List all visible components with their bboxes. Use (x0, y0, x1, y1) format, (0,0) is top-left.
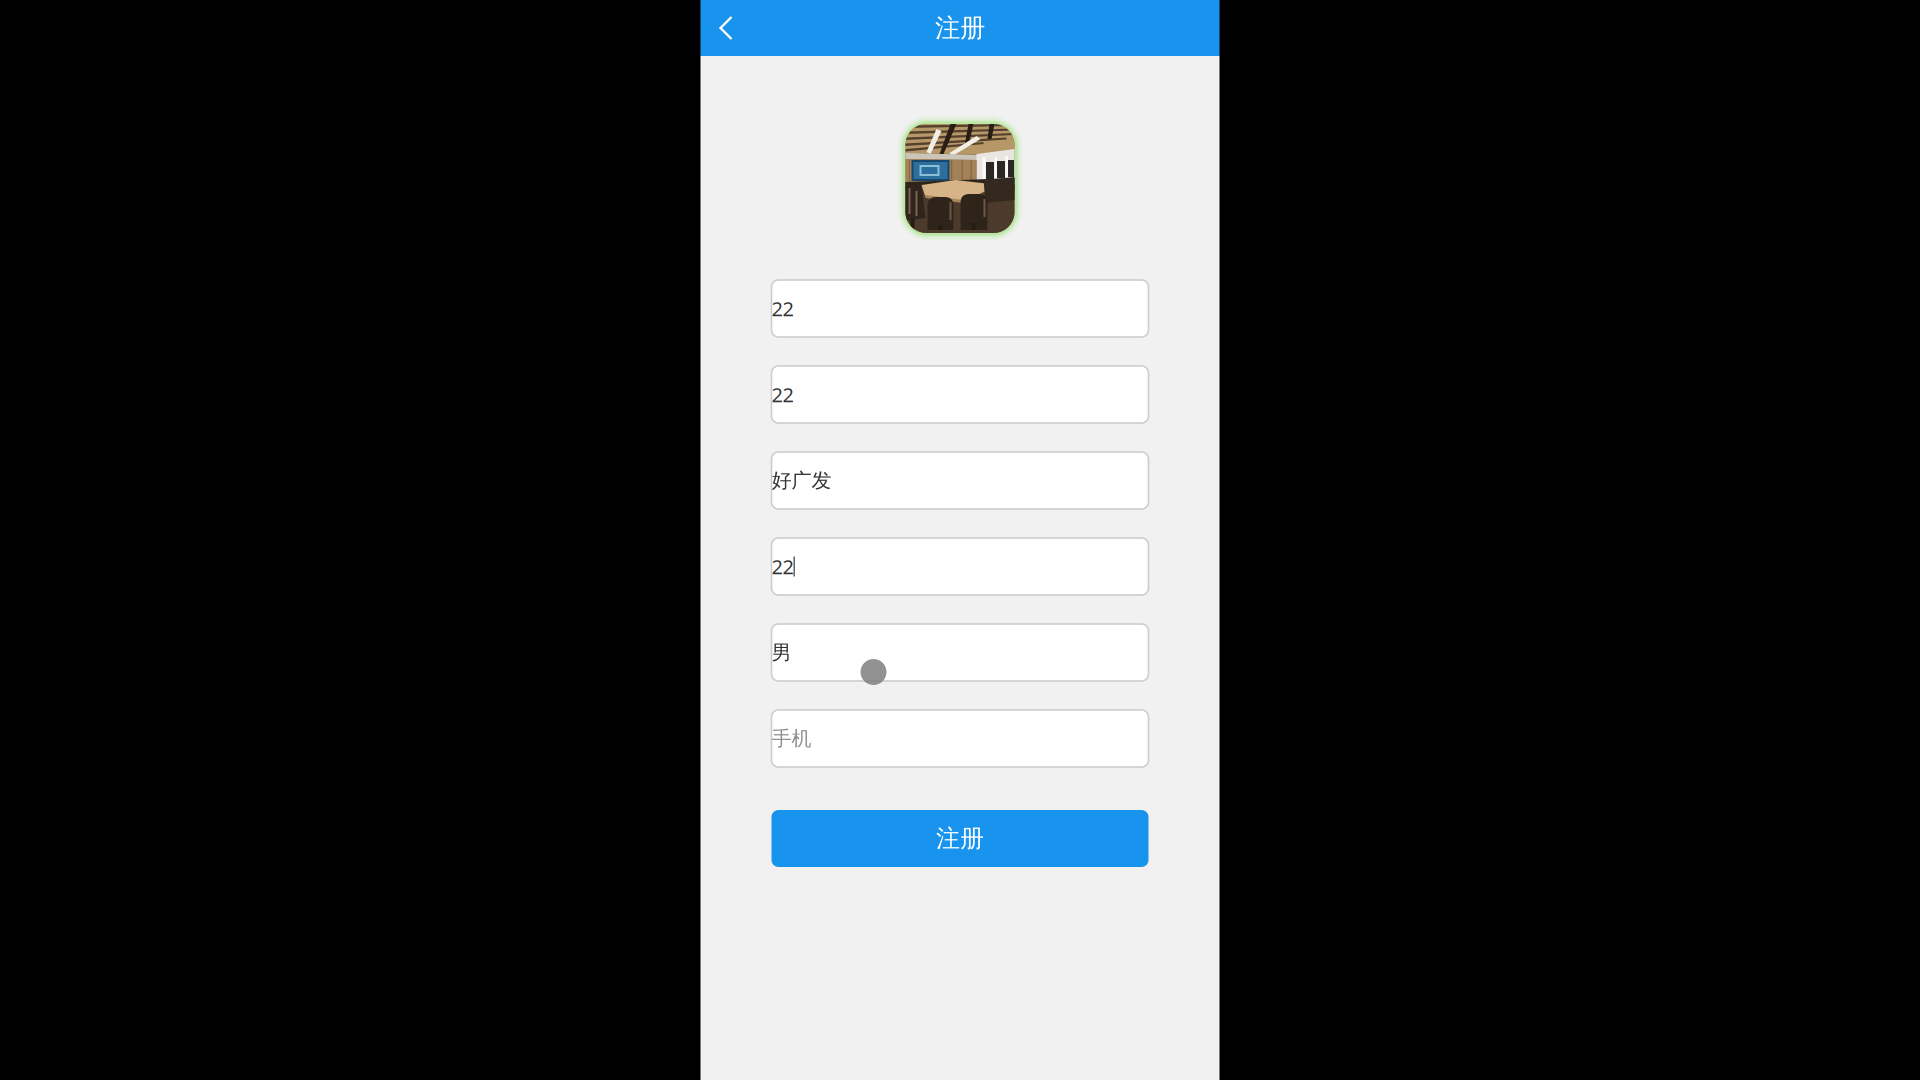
button[interactable]: 好广发 (771, 452, 1148, 509)
staticText: 手机 (771, 726, 811, 751)
staticText: 注册 (936, 824, 984, 853)
staticText: 男 (771, 640, 791, 665)
staticText: 22 (771, 553, 793, 580)
button[interactable]: 22 (771, 366, 1148, 423)
button[interactable]: 注册 (771, 810, 1148, 867)
button[interactable]: 男 (771, 624, 1148, 681)
button[interactable]: Back (700, 0, 764, 56)
staticText: 注册 (935, 12, 985, 43)
button[interactable]: 22 (771, 538, 1148, 595)
staticText: 好广发 (771, 468, 831, 493)
staticText: 22 (771, 381, 793, 408)
staticText: 22 (771, 295, 793, 322)
button[interactable]: 手机 (771, 710, 1148, 767)
button[interactable]: Choose profile photo (895, 114, 1024, 243)
button[interactable]: 22 (771, 280, 1148, 337)
